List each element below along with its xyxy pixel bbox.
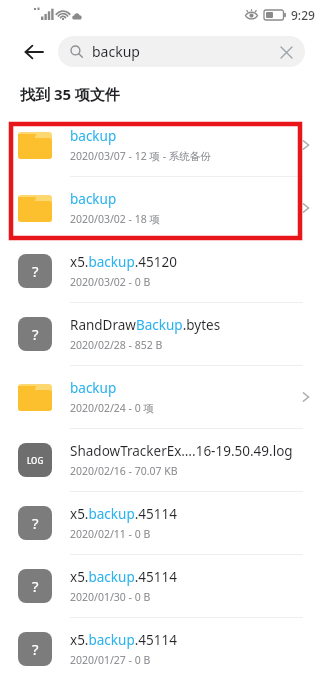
staticText: 2020/02/24 - 0 项 xyxy=(70,401,154,415)
staticText: 2020/01/30 - 0 B xyxy=(70,590,151,604)
staticText: ShadowTrackerEx….16-19.50.49.log xyxy=(70,442,293,460)
staticText: 2020/03/02 - 18 项 xyxy=(70,212,160,226)
button[interactable]: Back xyxy=(18,36,50,68)
staticText: backup xyxy=(92,42,140,61)
button[interactable]: Clear xyxy=(273,39,299,65)
button[interactable]: backup xyxy=(58,36,305,67)
button[interactable]: ? xyxy=(0,555,325,618)
staticText: backup xyxy=(70,379,117,397)
staticText: backup xyxy=(70,127,117,145)
staticText: 2020/02/16 - 70.07 KB xyxy=(70,464,178,478)
staticText: x5.backup.45120 xyxy=(70,253,177,271)
staticText: x5.backup.45114 xyxy=(70,505,177,523)
staticText: 找到 35 项文件 xyxy=(20,84,120,104)
button[interactable]: ? xyxy=(0,492,325,555)
button[interactable]: LOG xyxy=(0,429,325,492)
staticText: ? xyxy=(32,513,39,533)
staticText: x5.backup.45114 xyxy=(70,568,177,586)
button[interactable]: backup xyxy=(0,177,325,240)
staticText: ? xyxy=(32,576,39,596)
button[interactable]: backup xyxy=(0,366,325,429)
staticText: ? xyxy=(32,261,39,281)
staticText: LOG xyxy=(27,455,44,466)
staticText: RandDrawBackup.bytes xyxy=(70,316,221,334)
staticText: backup xyxy=(70,190,117,208)
button[interactable]: ? xyxy=(0,303,325,366)
staticText: ? xyxy=(32,324,39,344)
button[interactable]: ? xyxy=(0,618,325,680)
staticText: 2020/03/02 - 0 B xyxy=(70,275,151,289)
staticText: 2020/03/07 - 12 项 - 系统备份 xyxy=(70,149,211,163)
staticText: 9:29 xyxy=(291,7,315,23)
button[interactable]: backup xyxy=(0,114,325,177)
button[interactable]: ? xyxy=(0,240,325,303)
staticText: 2020/01/27 - 0 B xyxy=(70,653,151,667)
staticText: x5.backup.45114 xyxy=(70,631,177,649)
staticText: ? xyxy=(32,639,39,659)
staticText: 2020/02/11 - 0 B xyxy=(70,527,151,541)
staticText: 2020/02/28 - 852 B xyxy=(70,338,163,352)
